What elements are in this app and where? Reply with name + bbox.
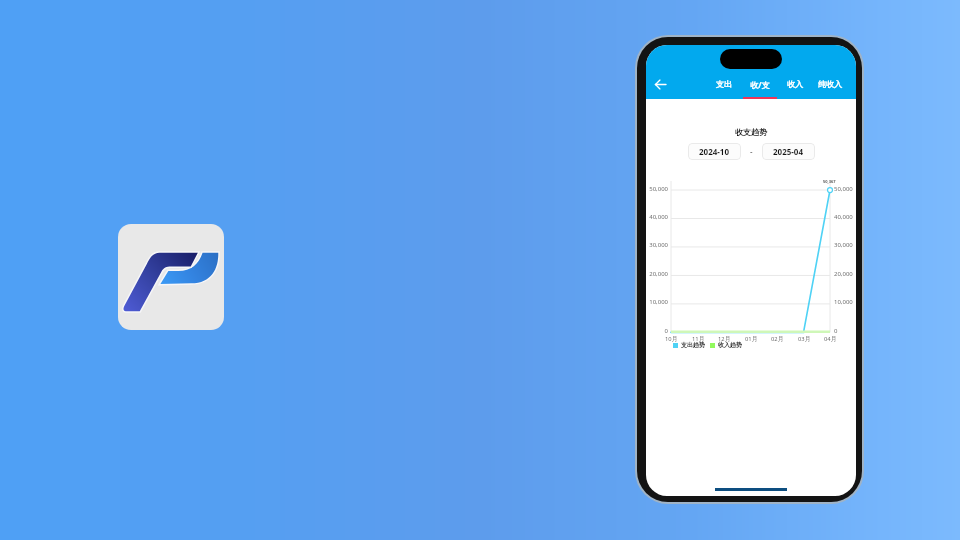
staticText: 10,000 [834,298,853,306]
staticText: 0 [834,327,838,335]
staticText: 支出趋势 [681,341,705,349]
staticText: 支出 [716,79,732,89]
staticText: 20,000 [649,270,668,278]
button[interactable]: Back [651,75,669,93]
staticText: 30,000 [834,241,853,249]
button[interactable]: 纯收入 [813,79,847,99]
staticText: 40,000 [649,213,668,221]
staticText: 收入趋势 [718,341,742,349]
button[interactable]: App icon [118,224,224,330]
staticText: 纯收入 [818,79,842,89]
button[interactable]: 收入 [778,79,812,99]
staticText: 收/支 [750,79,770,90]
button[interactable]: 收/支 [743,79,777,99]
staticText: 30,000 [649,241,668,249]
staticText: 收支趋势 [646,127,856,137]
button[interactable]: 2024-10 [688,143,741,160]
staticText: 01月 [745,335,758,343]
staticText: 20,000 [834,270,853,278]
staticText: 04月 [824,335,837,343]
staticText: 11月 [692,335,705,343]
staticText: 03月 [798,335,811,343]
staticText: 10月 [665,335,678,343]
staticText: 2025-04 [773,146,804,157]
staticText: 12月 [718,335,731,343]
staticText: 02月 [771,335,784,343]
staticText: 50,000 [834,185,853,193]
staticText: 2024-10 [699,146,730,157]
staticText: 40,000 [834,213,853,221]
staticText: - [750,146,753,157]
staticText: 0 [664,327,668,335]
staticText: 10,000 [649,298,668,306]
staticText: 50,367 [823,179,836,184]
button[interactable]: 支出 [707,79,741,99]
button[interactable]: 2025-04 [762,143,815,160]
staticText: 收入 [787,79,803,89]
staticText: 50,000 [649,185,668,193]
